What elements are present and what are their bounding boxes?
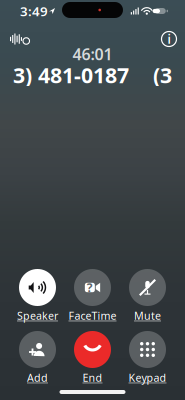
button[interactable]: Add (19, 331, 56, 383)
staticText: 3) 481-0187 (3 (13, 61, 172, 89)
button[interactable]: ? (74, 269, 111, 321)
staticText: i (167, 31, 170, 47)
button[interactable]: Speaker (19, 269, 56, 321)
staticText: Speaker (17, 308, 58, 323)
button[interactable]: Mute (129, 269, 166, 321)
button[interactable]: Keypad (129, 331, 166, 383)
staticText: 3:49 (20, 2, 48, 20)
button[interactable]: Call info (159, 29, 179, 49)
staticText: FaceTime (68, 308, 116, 323)
staticText: Keypad (128, 370, 166, 385)
staticText: ? (87, 279, 93, 295)
staticText: 46:01 (72, 43, 112, 65)
staticText: End (82, 370, 102, 385)
staticText: Mute (134, 308, 161, 323)
button[interactable]: End (74, 331, 111, 383)
staticText: Add (27, 370, 48, 385)
button[interactable]: Call recording (8, 30, 32, 48)
